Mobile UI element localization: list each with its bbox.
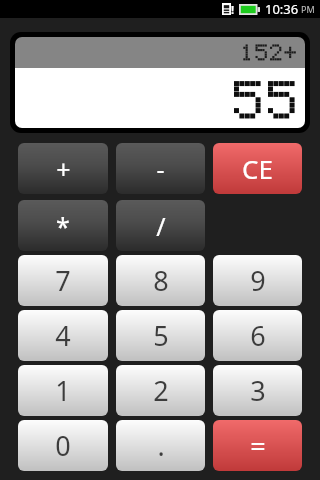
button[interactable]: CE [213, 143, 302, 194]
staticText: PM [301, 3, 315, 15]
button[interactable]: - [116, 143, 205, 194]
staticText: ! [231, 2, 235, 17]
button[interactable]: 8 [116, 255, 205, 306]
staticText: 4 [55, 317, 71, 354]
staticText: 3 [250, 372, 266, 409]
staticText: 1 [55, 372, 71, 409]
staticText: 8 [153, 262, 169, 299]
button[interactable]: 5 [116, 310, 205, 361]
button[interactable]: 6 [213, 310, 302, 361]
staticText: - [156, 152, 165, 186]
button[interactable]: = [213, 420, 302, 471]
button[interactable]: + [18, 143, 108, 194]
button[interactable]: 2 [116, 365, 205, 416]
staticText: 2 [153, 372, 169, 409]
staticText: 9 [250, 262, 266, 299]
staticText: / [156, 209, 166, 243]
staticText: 6 [250, 317, 266, 354]
button[interactable]: / [116, 200, 205, 251]
staticText: 7 [55, 262, 71, 299]
staticText: 0 [55, 427, 71, 464]
staticText: 5 [153, 317, 169, 354]
button[interactable]: * [18, 200, 108, 251]
staticText: * [56, 209, 70, 243]
button[interactable]: 7 [18, 255, 108, 306]
button[interactable]: 3 [213, 365, 302, 416]
staticText: . [157, 427, 165, 464]
button[interactable]: 1 [18, 365, 108, 416]
button[interactable]: 0 [18, 420, 108, 471]
staticText: = [250, 427, 266, 464]
staticText: 10:36 [265, 0, 299, 18]
staticText: CE [242, 151, 273, 186]
other: Battery [239, 4, 260, 15]
button[interactable]: 9 [213, 255, 302, 306]
button[interactable]: 4 [18, 310, 108, 361]
button[interactable]: . [116, 420, 205, 471]
staticText: + [56, 152, 71, 186]
other: SIM card [222, 3, 231, 15]
